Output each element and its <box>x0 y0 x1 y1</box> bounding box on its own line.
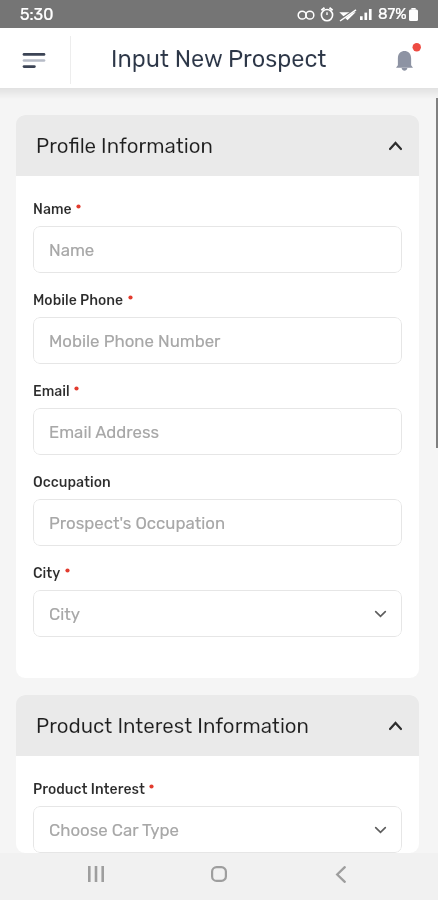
staticText: City <box>33 565 61 582</box>
button[interactable]: Profile Information <box>16 115 419 176</box>
button[interactable]: Back <box>319 852 363 896</box>
staticText: Mobile Phone Number <box>49 331 386 351</box>
button[interactable]: Choose Car Type <box>33 806 402 853</box>
staticText: Input New Prospect <box>111 45 327 73</box>
button[interactable]: Home <box>197 852 241 896</box>
staticText: Occupation <box>33 474 111 491</box>
staticText: Product Interest Information <box>36 714 389 738</box>
staticText: Profile Information <box>36 134 389 158</box>
button[interactable]: City <box>33 590 402 637</box>
staticText: Product Interest <box>33 781 145 798</box>
staticText: Email <box>33 383 70 400</box>
button[interactable]: Mobile Phone Number <box>33 317 402 364</box>
staticText: Mobile Phone <box>33 292 124 309</box>
button[interactable]: Notifications <box>382 38 427 83</box>
staticText: Name <box>33 201 72 218</box>
button[interactable]: Name <box>33 226 402 273</box>
staticText: Choose Car Type <box>49 820 375 840</box>
staticText: Email Address <box>49 422 386 442</box>
staticText: 87% <box>378 5 407 23</box>
staticText: 5:30 <box>20 5 54 24</box>
button[interactable]: Product Interest Information <box>16 695 419 756</box>
button[interactable]: Email Address <box>33 408 402 455</box>
staticText: City <box>49 604 375 624</box>
button[interactable]: Open navigation menu <box>11 37 57 83</box>
button[interactable]: Prospect's Occupation <box>33 499 402 546</box>
button[interactable]: Recent apps <box>74 852 118 896</box>
staticText: Prospect's Occupation <box>49 513 386 533</box>
staticText: Name <box>49 240 386 260</box>
